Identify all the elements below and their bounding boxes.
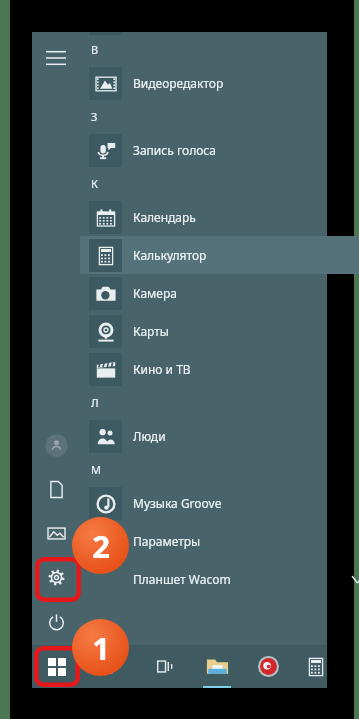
button[interactable]: Планшет Wacom	[80, 560, 359, 598]
staticText: Люди	[133, 428, 166, 444]
staticText: Карты	[133, 323, 169, 339]
button[interactable]: Музыка Groove	[80, 484, 359, 522]
button[interactable]: Кино и ТВ	[80, 350, 359, 388]
button[interactable]: Карты	[80, 312, 359, 350]
staticText: Л	[91, 395, 99, 410]
staticText: Запись голоса	[133, 142, 216, 158]
button[interactable]: Видеоредактор	[80, 64, 359, 102]
button[interactable]: Камера	[80, 274, 359, 312]
staticText: Камера	[133, 285, 177, 301]
button[interactable]: Documents	[32, 467, 80, 511]
button[interactable]: Menu	[32, 34, 80, 82]
staticText: Кино и ТВ	[133, 361, 191, 377]
staticText: З	[91, 109, 98, 124]
button[interactable]: Calculator	[294, 645, 338, 688]
staticText: Видеоредактор	[133, 75, 224, 91]
button[interactable]: Калькулятор	[80, 236, 359, 274]
staticText: 1	[92, 627, 110, 669]
button[interactable]: File Explorer	[194, 645, 240, 688]
staticText: Планшет Wacom	[133, 571, 231, 587]
button[interactable]: Media App	[246, 645, 290, 688]
button[interactable]: Параметры	[80, 522, 359, 560]
button[interactable]: Account	[32, 423, 80, 467]
staticText: К	[91, 176, 98, 191]
staticText: Музыка Groove	[133, 495, 222, 511]
button[interactable]: Люди	[80, 417, 359, 455]
staticText: 2	[92, 525, 110, 567]
button[interactable]: Start	[35, 645, 79, 688]
staticText: Калькулятор	[133, 247, 207, 263]
button[interactable]: Settings	[32, 555, 80, 599]
button[interactable]: Task View	[142, 645, 186, 688]
button[interactable]: Search	[83, 645, 127, 688]
button[interactable]: Pictures	[32, 511, 80, 555]
button[interactable]: Запись голоса	[80, 131, 359, 169]
staticText: Календарь	[133, 209, 196, 225]
staticText: В	[91, 42, 99, 57]
button[interactable]: Календарь	[80, 198, 359, 236]
staticText: М	[91, 462, 101, 477]
staticText: Параметры	[133, 533, 201, 549]
button[interactable]: Power	[32, 599, 80, 643]
